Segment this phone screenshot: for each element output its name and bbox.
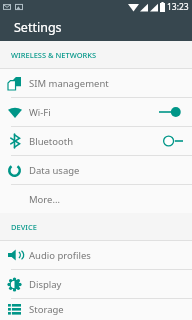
staticText: 13:23 bbox=[167, 1, 189, 13]
staticText: Data usage bbox=[29, 164, 80, 177]
staticText: Bluetooth bbox=[29, 135, 74, 148]
button[interactable]: Storage bbox=[0, 299, 192, 320]
staticText: Storage bbox=[29, 303, 64, 316]
button[interactable]: Audio profiles bbox=[0, 241, 192, 269]
button[interactable]: Wi-Fi bbox=[0, 98, 192, 126]
staticText: Settings bbox=[14, 19, 62, 36]
button[interactable]: More… bbox=[0, 185, 192, 213]
staticText: DEVICE bbox=[11, 222, 37, 232]
staticText: Display bbox=[29, 278, 62, 291]
button[interactable]: Data usage bbox=[0, 156, 192, 184]
staticText: Audio profiles bbox=[29, 249, 91, 262]
staticText: WIRELESS & NETWORKS bbox=[11, 50, 97, 60]
staticText: More… bbox=[29, 193, 60, 206]
staticText: SIM management bbox=[29, 77, 109, 90]
button[interactable]: Display bbox=[0, 270, 192, 298]
staticText: Wi-Fi bbox=[29, 106, 51, 119]
button[interactable]: Bluetooth bbox=[0, 127, 192, 155]
button[interactable]: SIM management bbox=[0, 69, 192, 97]
